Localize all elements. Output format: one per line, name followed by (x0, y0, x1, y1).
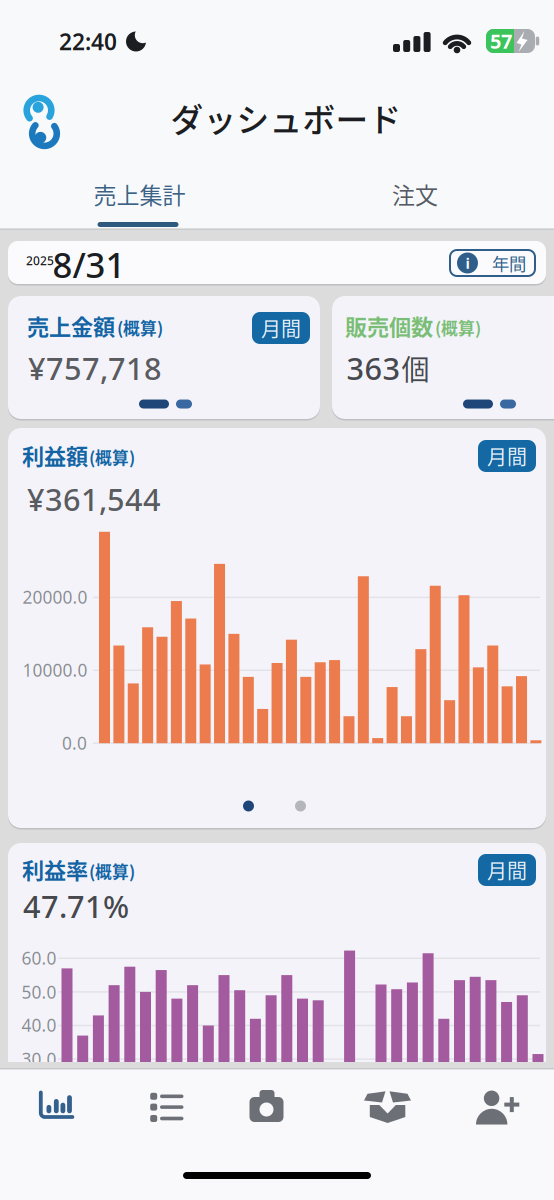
button[interactable]: リスト (111, 1076, 221, 1140)
staticText: 0.0 (62, 731, 87, 754)
staticText: (概算) (89, 859, 135, 883)
staticText: i (465, 253, 469, 273)
button[interactable]: カメラ (222, 1076, 332, 1140)
staticText: 363 (346, 348, 400, 388)
button[interactable]: 在庫 (333, 1076, 443, 1140)
staticText: 売上金額 (27, 309, 115, 341)
staticText: 57 (490, 28, 512, 54)
staticText: 60.0 (21, 946, 56, 969)
staticText: 8/31 (52, 241, 125, 287)
staticText: 売上集計 (93, 177, 185, 211)
staticText: 10000.0 (22, 658, 87, 681)
staticText: 年間 (492, 250, 526, 276)
staticText: ¥361,544 (27, 479, 161, 519)
staticText: 50.0 (21, 980, 56, 1003)
button[interactable]: 注文 (276, 166, 553, 222)
staticText: 47.71% (23, 886, 129, 926)
button[interactable]: i (449, 249, 536, 277)
staticText: 月間 (487, 855, 527, 884)
staticText: 30.0 (21, 1047, 56, 1070)
staticText: 20000.0 (22, 585, 87, 608)
staticText: ダッシュボード (170, 94, 401, 142)
staticText: 月間 (487, 441, 527, 470)
staticText: 利益率 (22, 853, 88, 885)
staticText: 利益額 (22, 439, 88, 471)
staticText: 注文 (392, 177, 438, 211)
staticText: 個 (401, 348, 429, 388)
staticText: 販売個数 (345, 309, 433, 341)
staticText: (概算) (117, 315, 163, 339)
button[interactable]: 売上集計 (1, 166, 278, 222)
button[interactable]: アカウント追加 (444, 1076, 554, 1140)
staticText: 40.0 (21, 1013, 56, 1036)
staticText: 2025 (26, 252, 54, 268)
staticText: ¥757,718 (28, 348, 162, 388)
button[interactable]: ダッシュボード (0, 1076, 110, 1140)
staticText: (概算) (435, 315, 481, 339)
staticText: 22:40 (59, 26, 117, 56)
staticText: (概算) (89, 445, 135, 469)
staticText: 月間 (261, 313, 301, 342)
